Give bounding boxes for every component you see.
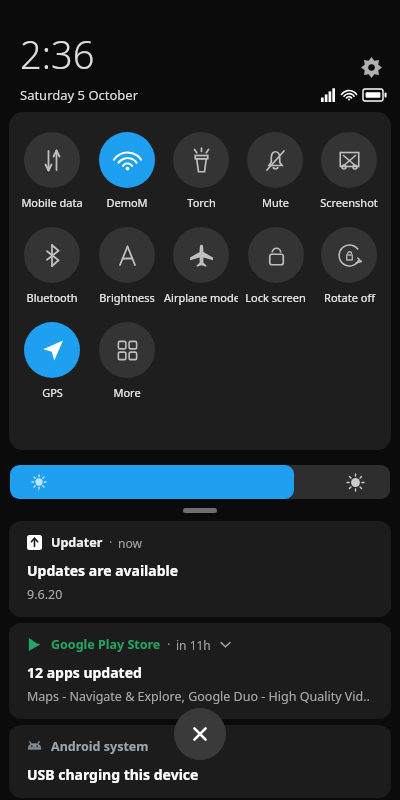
button[interactable]: Mute xyxy=(247,132,303,210)
staticText: USB charging this device xyxy=(27,765,199,784)
button[interactable]: GPS xyxy=(24,322,80,400)
button[interactable]: Mobile data xyxy=(21,132,83,210)
staticText: Mute xyxy=(262,195,289,210)
button[interactable]: DemoM xyxy=(99,132,155,210)
button[interactable]: Google Play Store xyxy=(9,623,391,719)
button[interactable]: Expand xyxy=(218,637,233,652)
staticText: Airplane mode xyxy=(164,290,238,305)
staticText: GPS xyxy=(42,385,63,400)
button[interactable]: Airplane mode xyxy=(164,227,238,305)
button[interactable]: Updater xyxy=(9,521,391,617)
staticText: now xyxy=(118,535,142,551)
staticText: Android system xyxy=(51,738,149,755)
staticText: 2:36 xyxy=(20,28,95,80)
button[interactable]: Android system xyxy=(9,725,391,798)
staticText: Maps - Navigate & Explore, Google Duo - … xyxy=(27,688,370,705)
staticText: Mobile data xyxy=(21,195,83,210)
button[interactable]: Settings xyxy=(356,52,386,82)
staticText: Google Play Store xyxy=(51,636,161,653)
staticText: Torch xyxy=(187,195,216,210)
button[interactable]: Brightness xyxy=(99,227,155,305)
button[interactable]: Brightness xyxy=(10,465,390,499)
staticText: · xyxy=(109,534,113,551)
staticText: Saturday 5 October xyxy=(20,86,139,104)
button[interactable]: Torch xyxy=(173,132,229,210)
staticText: in 11h xyxy=(176,637,211,653)
staticText: DemoM xyxy=(106,195,148,210)
button[interactable]: Rotate off xyxy=(321,227,377,305)
staticText: Bluetooth xyxy=(26,290,78,305)
staticText: Rotate off xyxy=(324,290,375,305)
staticText: · xyxy=(167,636,171,653)
staticText: 9.6.20 xyxy=(27,586,63,603)
staticText: Screenshot xyxy=(320,195,378,210)
staticText: Brightness xyxy=(99,290,155,305)
button[interactable]: Bluetooth xyxy=(24,227,80,305)
button[interactable]: More xyxy=(99,322,155,400)
staticText: More xyxy=(113,385,141,400)
staticText: Updater xyxy=(51,534,103,551)
staticText: 12 apps updated xyxy=(27,663,142,682)
staticText: Updates are available xyxy=(27,561,179,580)
button[interactable]: Lock screen xyxy=(245,227,306,305)
button[interactable]: Clear all notifications xyxy=(174,708,226,760)
staticText: Lock screen xyxy=(245,290,306,305)
button[interactable]: Screenshot xyxy=(320,132,378,210)
